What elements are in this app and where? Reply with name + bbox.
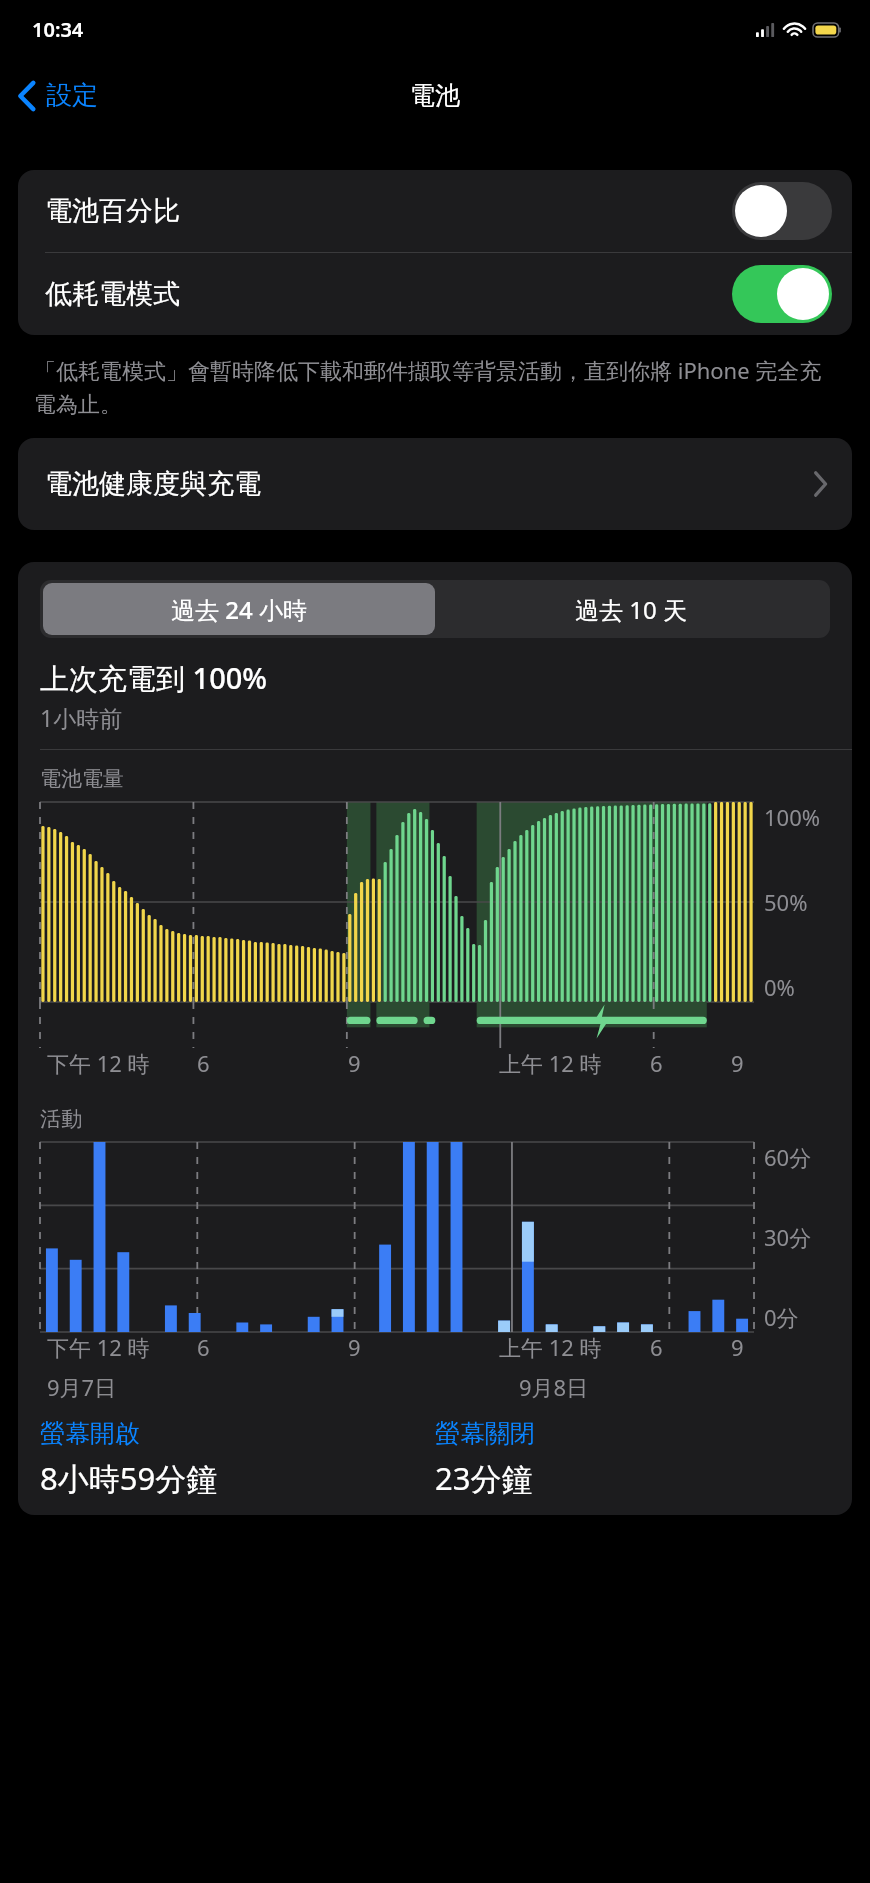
staticText: 0分: [764, 1302, 799, 1332]
staticText: 9: [731, 1048, 744, 1078]
staticText: 電池百分比: [45, 194, 732, 228]
staticText: 0%: [764, 972, 795, 1002]
staticText: 電池電量: [40, 766, 124, 792]
button[interactable]: 過去 24 小時: [43, 583, 435, 635]
staticText: 下午 12 時: [47, 1048, 150, 1078]
button[interactable]: Toggle off: [732, 182, 832, 240]
staticText: 上午 12 時: [499, 1332, 602, 1362]
staticText: 上次充電到 100%: [40, 658, 268, 698]
staticText: 8小時59分鐘: [40, 1457, 218, 1499]
button[interactable]: 電池健康度與充電: [18, 438, 852, 530]
staticText: 過去 24 小時: [171, 593, 307, 626]
staticText: 設定: [46, 79, 98, 112]
button[interactable]: 設定: [0, 69, 112, 122]
button[interactable]: Toggle on: [732, 265, 832, 323]
staticText: 過去 10 天: [575, 593, 687, 626]
button[interactable]: 電池百分比: [18, 170, 852, 252]
staticText: 螢幕開啟: [40, 1418, 140, 1449]
staticText: 9: [731, 1332, 744, 1362]
staticText: 6: [650, 1048, 663, 1078]
staticText: 6: [650, 1332, 663, 1362]
button[interactable]: 低耗電模式: [18, 253, 852, 335]
staticText: 50%: [764, 887, 808, 917]
staticText: 60分: [764, 1142, 812, 1172]
button[interactable]: 過去 10 天: [435, 583, 827, 635]
staticText: 9月7日: [47, 1372, 117, 1402]
staticText: 10:34: [32, 16, 84, 43]
staticText: 低耗電模式: [45, 277, 732, 311]
staticText: 6: [197, 1332, 210, 1362]
staticText: 9: [348, 1048, 361, 1078]
staticText: 9: [348, 1332, 361, 1362]
staticText: 電池: [410, 80, 460, 111]
staticText: 6: [197, 1048, 210, 1078]
staticText: 1小時前: [40, 702, 123, 733]
staticText: 23分鐘: [435, 1457, 533, 1499]
staticText: 螢幕關閉: [435, 1418, 535, 1449]
staticText: 30分: [764, 1222, 812, 1252]
staticText: 100%: [764, 802, 821, 832]
staticText: 「低耗電模式」會暫時降低下載和郵件擷取等背景活動，直到你將 iPhone 完全充…: [34, 355, 838, 418]
staticText: 上午 12 時: [499, 1048, 602, 1078]
staticText: 電池健康度與充電: [45, 467, 813, 501]
staticText: 下午 12 時: [47, 1332, 150, 1362]
staticText: 9月8日: [519, 1372, 589, 1402]
staticText: 活動: [40, 1106, 82, 1132]
